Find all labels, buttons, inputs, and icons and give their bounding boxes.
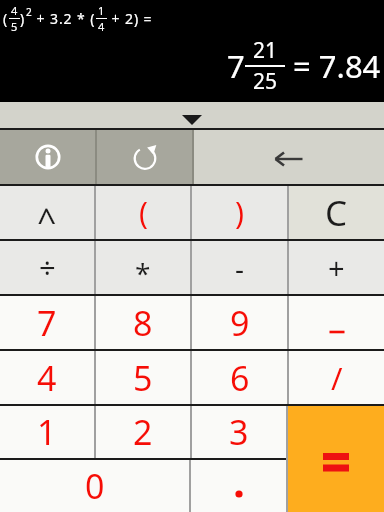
button[interactable]: [289, 296, 384, 349]
staticText: 1: [37, 409, 57, 455]
button[interactable]: 3: [192, 406, 286, 458]
staticText: = 7.84: [285, 45, 381, 87]
button[interactable]: 5: [96, 351, 190, 404]
button[interactable]: ): [192, 186, 287, 239]
staticText: 4: [98, 19, 105, 34]
staticText: + 3.2 * (: [32, 9, 96, 28]
button[interactable]: C: [289, 186, 384, 239]
staticText: 2: [26, 5, 32, 19]
staticText: /: [331, 357, 343, 399]
button[interactable]: [97, 130, 192, 184]
button[interactable]: ÷: [0, 241, 94, 294]
staticText: +: [328, 248, 345, 287]
staticText: 7: [37, 300, 57, 346]
staticText: 5: [133, 355, 153, 401]
button[interactable]: 4: [0, 351, 94, 404]
button[interactable]: ^: [0, 186, 94, 239]
staticText: ): [235, 192, 244, 233]
staticText: *: [135, 254, 151, 292]
staticText: + 2) =: [107, 9, 153, 28]
button[interactable]: *: [96, 241, 190, 294]
button[interactable]: 9: [192, 296, 287, 349]
button[interactable]: (: [96, 186, 190, 239]
staticText: 1: [98, 3, 105, 18]
button[interactable]: /: [289, 351, 384, 404]
button[interactable]: 1: [0, 406, 94, 458]
staticText: 5: [11, 19, 18, 34]
staticText: 3: [229, 409, 249, 455]
staticText: ÷: [39, 248, 56, 287]
button[interactable]: [0, 130, 95, 184]
staticText: 9: [230, 300, 250, 346]
staticText: ^: [37, 197, 57, 243]
staticText: 7: [227, 45, 245, 87]
button[interactable]: [288, 406, 384, 512]
staticText: 21: [253, 36, 278, 65]
staticText: 8: [133, 300, 153, 346]
staticText: 0: [85, 463, 105, 509]
staticText: -: [235, 249, 245, 287]
staticText: 4: [11, 3, 18, 18]
staticText: 25: [253, 67, 278, 96]
button[interactable]: +: [289, 241, 384, 294]
button[interactable]: 0: [0, 460, 189, 512]
staticText: C: [325, 189, 348, 237]
button[interactable]: 2: [96, 406, 190, 458]
staticText: ): [20, 9, 26, 28]
button[interactable]: 7: [0, 296, 94, 349]
staticText: (: [3, 9, 9, 28]
staticText: (: [139, 192, 148, 233]
staticText: 2: [133, 409, 153, 455]
staticText: 4: [37, 355, 57, 401]
button[interactable]: 6: [192, 351, 287, 404]
button[interactable]: 8: [96, 296, 190, 349]
staticText: 6: [230, 355, 250, 401]
button[interactable]: [194, 130, 384, 184]
button[interactable]: [191, 460, 286, 512]
button[interactable]: -: [192, 241, 287, 294]
